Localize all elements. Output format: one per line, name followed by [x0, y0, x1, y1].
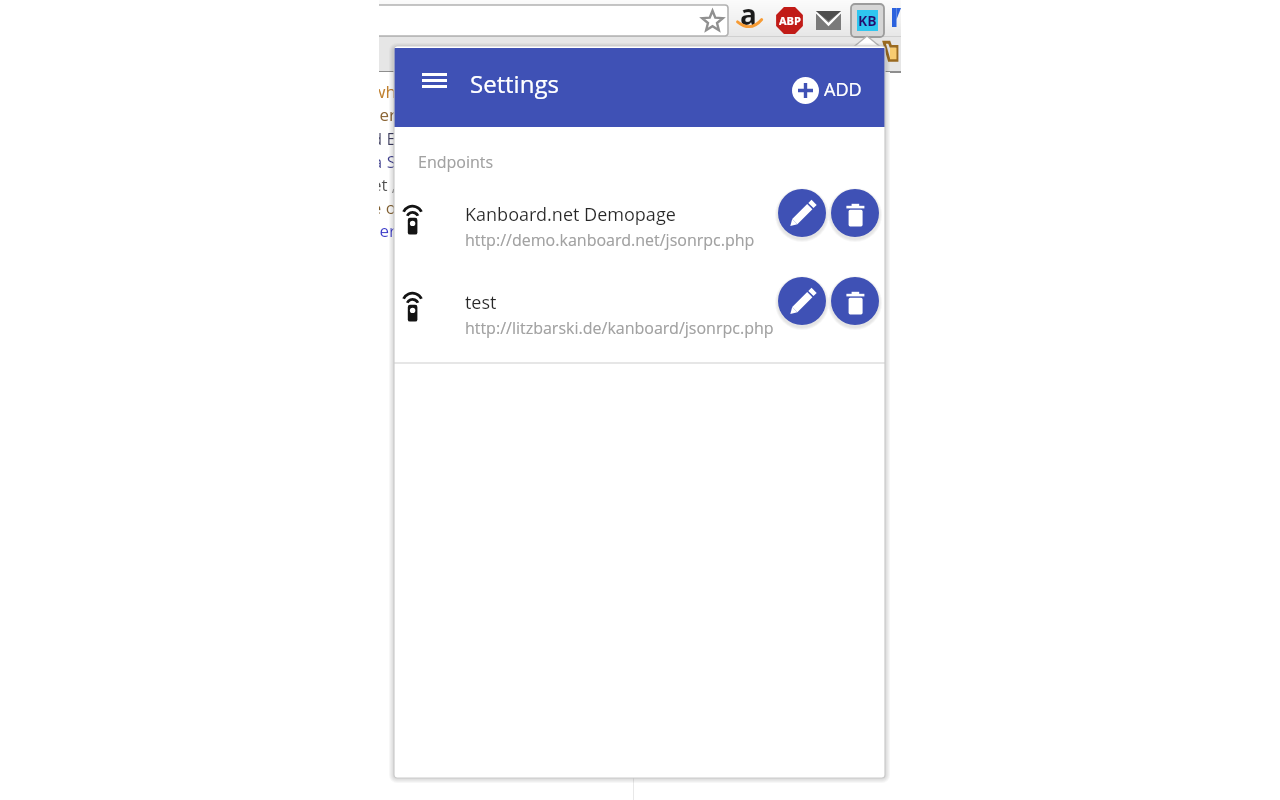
staticText: a: [740, 0, 757, 33]
other: Bookmark this page: [701, 10, 724, 33]
staticText: Endpoints: [418, 151, 494, 173]
staticText: Kanboard.net Demopage: [465, 202, 676, 227]
button[interactable]: Amazon: [737, 3, 766, 32]
button[interactable]: [394, 273, 885, 329]
staticText: ABP: [779, 13, 801, 28]
button[interactable]: Mail: [816, 11, 841, 30]
button[interactable]: Edit: [778, 189, 826, 237]
button[interactable]: Delete: [831, 189, 879, 237]
staticText: get ,: [331, 173, 396, 196]
staticText: http://litzbarski.de/kanboard/jsonrpc.ph…: [465, 317, 774, 339]
staticText: owner: [331, 219, 396, 242]
staticText: test: [465, 290, 497, 315]
staticText: Settings: [470, 67, 559, 100]
staticText: KB: [858, 11, 877, 30]
button[interactable]: Address bar: [379, 5, 728, 36]
button[interactable]: ADD: [792, 76, 862, 104]
staticText: ADD: [824, 77, 862, 102]
button[interactable]: [394, 185, 885, 241]
staticText: owner: [331, 103, 396, 126]
button[interactable]: Delete: [831, 277, 879, 325]
staticText: wh: [331, 80, 396, 103]
button[interactable]: Edit: [778, 277, 826, 325]
staticText: and E: [331, 127, 396, 150]
button[interactable]: Kanboard extension: [851, 4, 884, 37]
button[interactable]: Menu: [410, 56, 458, 104]
staticText: the o: [331, 196, 396, 219]
button[interactable]: AdBlock Plus: [775, 6, 804, 35]
staticText: http://demo.kanboard.net/jsonrpc.php: [465, 229, 755, 251]
staticText: via S: [331, 150, 396, 173]
